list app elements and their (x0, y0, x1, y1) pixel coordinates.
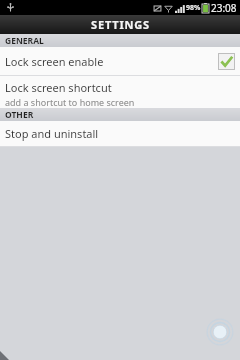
staticText: add a shortcut to home screen (5, 96, 135, 108)
staticText: SETTINGS (91, 17, 150, 32)
staticText: Lock screen enable (5, 54, 104, 69)
staticText: Stop and uninstall (5, 126, 99, 141)
staticText: 23:08 (211, 1, 237, 15)
button[interactable]: Lock screen enable checkbox (218, 53, 235, 70)
button[interactable]: Lock screen enable (0, 47, 240, 75)
staticText: OTHER (5, 109, 34, 121)
staticText: GENERAL (5, 35, 44, 47)
button[interactable]: Stop and uninstall (0, 121, 240, 146)
staticText: Lock screen shortcut (5, 80, 112, 95)
button[interactable]: Lock screen shortcut (0, 76, 240, 108)
button[interactable]: Assistant (206, 318, 234, 346)
staticText: 98% (186, 3, 201, 13)
